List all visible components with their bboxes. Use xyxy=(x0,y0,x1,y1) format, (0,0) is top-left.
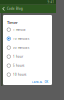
staticText: 10 hours xyxy=(13,73,26,76)
staticText: 30 minutes xyxy=(13,46,29,49)
button[interactable]: 30 minutes xyxy=(3,43,52,52)
staticText: OK xyxy=(45,80,49,84)
button[interactable]: 1 hour xyxy=(3,52,52,61)
button[interactable]: 10 hours xyxy=(3,70,52,79)
button[interactable]: 1 minute xyxy=(3,25,52,34)
button[interactable]: 5 hours xyxy=(3,61,52,70)
button[interactable]: CANCEL xyxy=(30,79,43,85)
button[interactable]: Back xyxy=(1,4,6,13)
staticText: CANCEL xyxy=(32,80,42,84)
button[interactable]: 10 minutes xyxy=(3,34,52,43)
staticText: 9:41 xyxy=(47,0,54,4)
staticText: Timer xyxy=(7,20,18,25)
staticText: 1 hour xyxy=(13,55,23,58)
button[interactable]: OK xyxy=(43,79,50,85)
staticText: 10 minutes xyxy=(13,37,29,40)
staticText: 1 minute xyxy=(13,28,26,31)
staticText: Code Blog xyxy=(7,7,23,10)
staticText: 5 hours xyxy=(13,64,24,67)
